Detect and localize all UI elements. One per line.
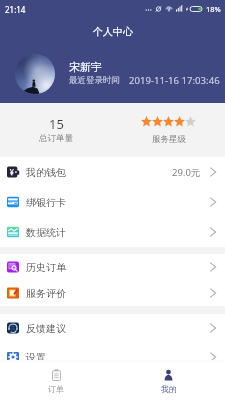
button[interactable]: 绑银行卡 bbox=[0, 187, 225, 217]
staticText: 服务星级 bbox=[152, 134, 186, 145]
staticText: 绑银行卡 bbox=[26, 196, 66, 209]
staticText: 个人中心 bbox=[93, 25, 133, 38]
button[interactable]: 我的钱包 bbox=[0, 157, 225, 187]
staticText: 21:14 bbox=[5, 4, 26, 15]
staticText: 历史订单 bbox=[26, 261, 66, 274]
staticText: 数据统计 bbox=[26, 226, 66, 239]
staticText: 29.0元 bbox=[172, 166, 201, 179]
button[interactable]: 反馈建议 bbox=[0, 314, 225, 342]
staticText: 18% bbox=[206, 4, 221, 14]
button[interactable]: 历史订单 bbox=[0, 254, 225, 280]
button[interactable]: 数据统计 bbox=[0, 217, 225, 247]
staticText: 总订单量 bbox=[39, 133, 73, 144]
staticText: 订单 bbox=[48, 384, 64, 394]
staticText: 我的钱包 bbox=[26, 166, 66, 179]
staticText: 宋新宇 bbox=[69, 60, 102, 74]
staticText: 我的 bbox=[161, 384, 177, 394]
button[interactable]: 服务评价 bbox=[0, 280, 225, 306]
staticText: 15 bbox=[49, 115, 64, 133]
staticText: 2019-11-16 17:03:46 bbox=[129, 74, 220, 87]
staticText: 反馈建议 bbox=[26, 322, 66, 335]
button[interactable]: 设置 bbox=[0, 342, 225, 372]
staticText: 设置 bbox=[26, 351, 46, 364]
button[interactable]: 订单 bbox=[0, 363, 112, 400]
staticText: 服务评价 bbox=[26, 287, 66, 300]
button[interactable]: 我的 bbox=[112, 363, 225, 400]
staticText: 最近登录时间 bbox=[69, 75, 120, 86]
